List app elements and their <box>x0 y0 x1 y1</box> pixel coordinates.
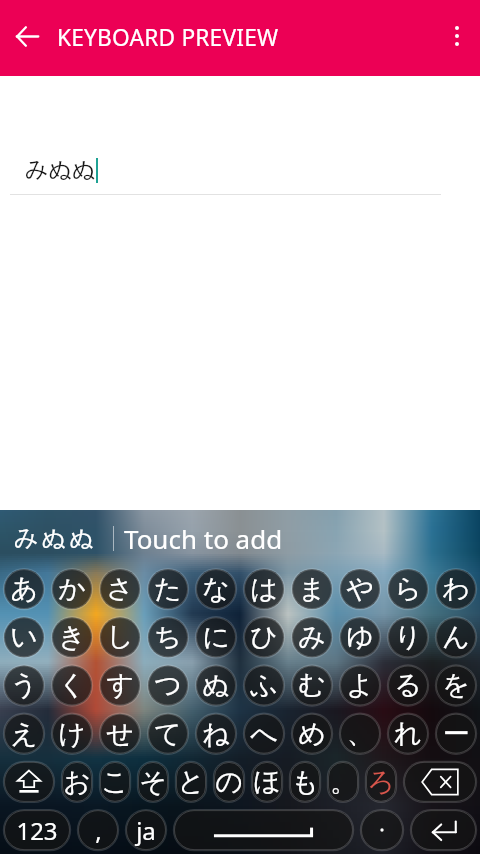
button[interactable]: し <box>96 613 144 661</box>
staticText: い <box>10 620 38 654</box>
button[interactable]: た <box>144 565 192 613</box>
button[interactable]: の <box>210 758 248 806</box>
button[interactable]: More options <box>434 13 480 59</box>
button[interactable]: を <box>432 661 480 709</box>
button[interactable]: や <box>336 565 384 613</box>
button[interactable]: ほ <box>248 758 286 806</box>
button[interactable]: ふ <box>240 661 288 709</box>
button[interactable]: に <box>192 613 240 661</box>
button[interactable]: み <box>288 613 336 661</box>
staticText: さ <box>106 572 134 606</box>
button[interactable]: て <box>144 710 192 758</box>
staticText: は <box>250 572 278 606</box>
staticText: れ <box>394 717 422 751</box>
staticText: お <box>63 765 91 799</box>
button[interactable]: 。 <box>324 758 362 806</box>
staticText: ま <box>298 572 326 606</box>
button[interactable]: Space <box>170 806 357 854</box>
button[interactable]: く <box>48 661 96 709</box>
staticText: みぬぬ <box>14 523 97 553</box>
staticText: て <box>154 717 182 751</box>
staticText: む <box>298 668 326 702</box>
button[interactable]: な <box>192 565 240 613</box>
button[interactable]: ま <box>288 565 336 613</box>
button[interactable]: Navigate up <box>4 13 50 59</box>
button[interactable]: め <box>288 710 336 758</box>
staticText: ふ <box>250 668 278 702</box>
other: Period <box>377 825 387 835</box>
button[interactable]: , <box>74 806 122 854</box>
button[interactable]: か <box>48 565 96 613</box>
button[interactable]: す <box>96 661 144 709</box>
button[interactable]: ぬ <box>192 661 240 709</box>
button[interactable]: よ <box>336 661 384 709</box>
button[interactable]: Delete <box>400 758 480 806</box>
button[interactable]: は <box>240 565 288 613</box>
button[interactable]: い <box>0 613 48 661</box>
staticText: き <box>58 620 86 654</box>
button[interactable]: あ <box>0 565 48 613</box>
staticText: 。 <box>330 765 357 799</box>
button[interactable]: Period <box>357 806 407 854</box>
staticText: ひ <box>250 620 278 654</box>
staticText: を <box>442 668 470 702</box>
staticText: ゆ <box>346 620 374 654</box>
button[interactable]: みぬぬ <box>14 523 97 553</box>
other: Shift <box>16 769 42 795</box>
staticText: 123 <box>16 814 58 847</box>
button[interactable]: う <box>0 661 48 709</box>
button[interactable]: る <box>384 661 432 709</box>
button[interactable]: せ <box>96 710 144 758</box>
button[interactable]: 123 <box>0 806 74 854</box>
staticText: ろ <box>367 765 395 799</box>
button[interactable]: お <box>58 758 96 806</box>
button[interactable]: Enter <box>407 806 480 854</box>
button[interactable]: ん <box>432 613 480 661</box>
staticText: 、 <box>347 717 374 751</box>
button[interactable]: け <box>48 710 96 758</box>
button[interactable]: れ <box>384 710 432 758</box>
staticText: や <box>346 572 374 606</box>
staticText: け <box>58 717 86 751</box>
staticText: る <box>394 668 422 702</box>
button[interactable]: Shift <box>0 758 58 806</box>
button[interactable]: ゆ <box>336 613 384 661</box>
other: Space <box>170 806 357 854</box>
button[interactable]: も <box>286 758 324 806</box>
staticText: み <box>298 620 326 654</box>
button[interactable]: わ <box>432 565 480 613</box>
button[interactable]: き <box>48 613 96 661</box>
staticText: た <box>154 572 182 606</box>
button[interactable]: ち <box>144 613 192 661</box>
button[interactable]: そ <box>134 758 172 806</box>
staticText: あ <box>10 572 38 606</box>
staticText: そ <box>139 765 167 799</box>
button[interactable]: Touch to add <box>124 521 283 556</box>
button[interactable]: さ <box>96 565 144 613</box>
button[interactable]: ー <box>432 710 480 758</box>
staticText: う <box>10 668 38 702</box>
staticText: Touch to add <box>124 521 283 556</box>
staticText: よ <box>346 668 374 702</box>
button[interactable]: と <box>172 758 210 806</box>
staticText: つ <box>154 668 182 702</box>
button[interactable]: り <box>384 613 432 661</box>
button[interactable]: ひ <box>240 613 288 661</box>
button[interactable]: ね <box>192 710 240 758</box>
button[interactable]: ら <box>384 565 432 613</box>
button[interactable]: つ <box>144 661 192 709</box>
staticText: え <box>10 717 38 751</box>
button[interactable]: へ <box>240 710 288 758</box>
staticText: り <box>394 620 422 654</box>
button[interactable]: こ <box>96 758 134 806</box>
button[interactable]: ろ <box>362 758 400 806</box>
button[interactable]: 、 <box>336 710 384 758</box>
button[interactable]: ja <box>122 806 170 854</box>
staticText: , <box>95 814 102 847</box>
staticText: の <box>215 765 243 799</box>
staticText: みぬぬ <box>25 155 96 184</box>
staticText: く <box>58 668 86 702</box>
staticText: こ <box>101 765 129 799</box>
button[interactable]: え <box>0 710 48 758</box>
button[interactable]: む <box>288 661 336 709</box>
